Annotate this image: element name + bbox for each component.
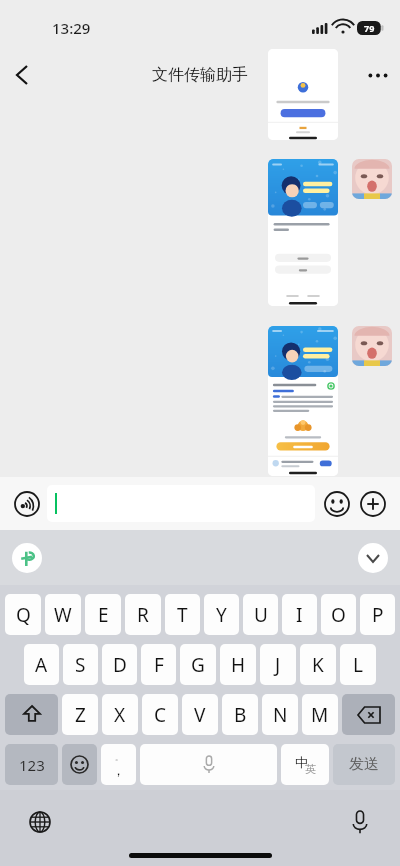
- button[interactable]: Input method: [12, 543, 42, 573]
- staticText: Q: [16, 602, 31, 628]
- button[interactable]: O: [321, 594, 356, 635]
- staticText: V: [194, 702, 206, 728]
- button[interactable]: Chinese English toggle: [281, 744, 329, 785]
- button[interactable]: M: [302, 694, 338, 735]
- button[interactable]: More actions: [355, 486, 391, 522]
- button[interactable]: X: [102, 694, 138, 735]
- staticText: 中: [295, 754, 308, 770]
- button[interactable]: Space, voice input: [140, 744, 277, 785]
- button[interactable]: L: [340, 644, 376, 685]
- button[interactable]: K: [300, 644, 336, 685]
- button[interactable]: [352, 159, 392, 199]
- staticText: O: [331, 602, 346, 628]
- button[interactable]: U: [243, 594, 278, 635]
- staticText: F: [154, 652, 164, 678]
- button[interactable]: [268, 159, 338, 306]
- staticText: W: [54, 602, 72, 628]
- staticText: P: [372, 602, 384, 628]
- button[interactable]: C: [142, 694, 178, 735]
- button[interactable]: P: [360, 594, 395, 635]
- button[interactable]: Shift: [5, 694, 58, 735]
- button[interactable]: D: [102, 644, 137, 685]
- staticText: H: [231, 652, 246, 678]
- button[interactable]: [352, 326, 392, 366]
- staticText: Y: [216, 602, 227, 628]
- button[interactable]: V: [182, 694, 218, 735]
- button[interactable]: Hide keyboard: [358, 543, 388, 573]
- button[interactable]: Change language: [26, 808, 54, 836]
- button[interactable]: Emoji: [319, 486, 355, 522]
- button[interactable]: Dictation: [346, 808, 374, 836]
- button[interactable]: Backspace: [342, 694, 395, 735]
- staticText: 13:29: [52, 18, 91, 38]
- button[interactable]: I: [282, 594, 317, 635]
- button[interactable]: H: [220, 644, 256, 685]
- staticText: 英: [305, 762, 316, 776]
- staticText: N: [273, 702, 288, 728]
- staticText: C: [154, 702, 167, 728]
- staticText: U: [254, 602, 268, 628]
- button[interactable]: 发送: [333, 744, 395, 785]
- staticText: B: [234, 702, 247, 728]
- button[interactable]: B: [222, 694, 258, 735]
- button[interactable]: Emoji keyboard: [62, 744, 97, 785]
- button[interactable]: Q: [5, 594, 41, 635]
- button[interactable]: T: [165, 594, 200, 635]
- button[interactable]: Z: [62, 694, 98, 735]
- button[interactable]: Punctuation: [101, 744, 136, 785]
- button[interactable]: Back: [0, 55, 44, 95]
- button[interactable]: [268, 49, 338, 140]
- staticText: Z: [75, 702, 86, 728]
- button[interactable]: E: [85, 594, 121, 635]
- staticText: 123: [19, 755, 45, 775]
- button[interactable]: J: [260, 644, 296, 685]
- staticText: X: [114, 702, 126, 728]
- staticText: R: [137, 602, 149, 628]
- button[interactable]: 123: [5, 744, 58, 785]
- staticText: I: [296, 602, 303, 628]
- staticText: K: [312, 652, 324, 678]
- staticText: 文件传输助手: [152, 65, 248, 85]
- button[interactable]: G: [180, 644, 216, 685]
- staticText: G: [191, 652, 205, 678]
- staticText: J: [275, 652, 281, 678]
- button[interactable]: [47, 485, 315, 522]
- button[interactable]: A: [24, 644, 59, 685]
- button[interactable]: More: [356, 55, 400, 95]
- button[interactable]: F: [141, 644, 176, 685]
- button[interactable]: W: [45, 594, 81, 635]
- button[interactable]: S: [63, 644, 98, 685]
- button[interactable]: R: [125, 594, 161, 635]
- staticText: A: [35, 652, 48, 678]
- staticText: M: [311, 702, 329, 728]
- staticText: S: [75, 652, 86, 678]
- staticText: 。: [115, 752, 123, 762]
- staticText: D: [113, 652, 127, 678]
- button[interactable]: [268, 326, 338, 476]
- staticText: 79: [364, 22, 375, 34]
- staticText: T: [177, 602, 188, 628]
- staticText: 发送: [349, 755, 379, 774]
- staticText: ，: [112, 762, 125, 778]
- staticText: E: [98, 602, 109, 628]
- button[interactable]: Voice input: [9, 486, 45, 522]
- button[interactable]: N: [262, 694, 298, 735]
- staticText: L: [353, 652, 363, 678]
- button[interactable]: Y: [204, 594, 239, 635]
